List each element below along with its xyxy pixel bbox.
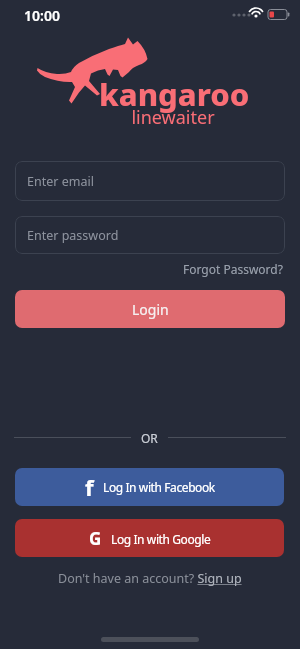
staticText: Log In with Facebook (103, 479, 215, 495)
staticText: Enter password (27, 227, 119, 244)
staticText: f (85, 472, 94, 502)
staticText: Enter email (27, 173, 94, 190)
staticText: Login (132, 300, 169, 319)
button[interactable]: G (15, 519, 284, 557)
staticText: kangaroo (99, 73, 250, 115)
button[interactable]: Forgot Password? (183, 261, 283, 277)
button[interactable]: Enter email (15, 161, 285, 201)
staticText: linewaiter (46, 105, 300, 130)
staticText: 10:00 (24, 6, 60, 25)
staticText: Log In with Google (111, 531, 211, 547)
button[interactable]: Don't have an account? Sign up (58, 570, 242, 587)
staticText: G (89, 527, 102, 550)
button[interactable]: Login (15, 290, 285, 328)
staticText: OR (141, 430, 158, 444)
button[interactable]: f (15, 468, 284, 506)
button[interactable]: Enter password (15, 216, 285, 254)
